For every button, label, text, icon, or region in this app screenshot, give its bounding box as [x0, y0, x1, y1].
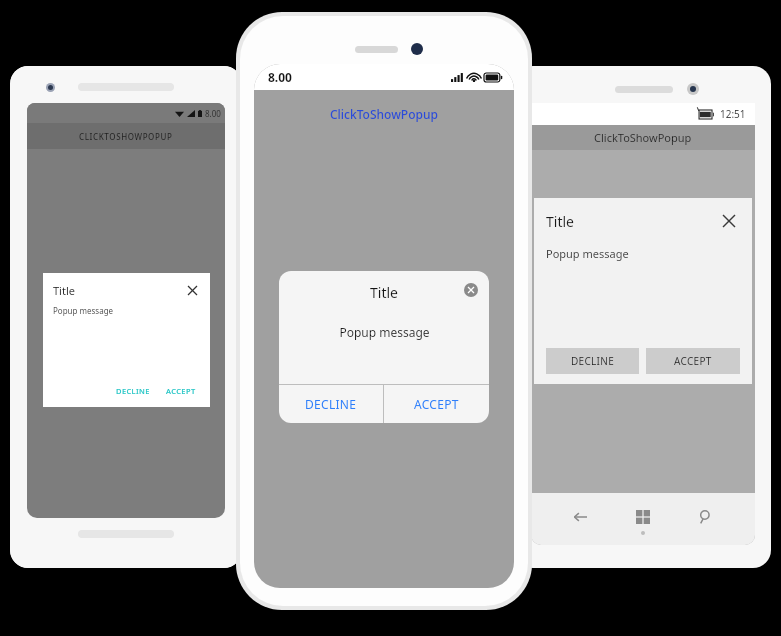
staticText: 8.00: [268, 69, 292, 85]
button[interactable]: DECLINE: [279, 385, 383, 423]
button[interactable]: Back: [566, 503, 594, 531]
staticText: DECLINE: [116, 386, 150, 396]
staticText: ACCEPT: [674, 354, 712, 368]
button[interactable]: CLICKTOSHOWPOPUP: [27, 123, 225, 149]
staticText: ACCEPT: [414, 396, 459, 412]
staticText: ClickToShowPopup: [330, 106, 438, 122]
button[interactable]: ClickToShowPopup: [324, 104, 444, 124]
button[interactable]: DECLINE: [546, 348, 639, 374]
staticText: 12:51: [720, 107, 746, 121]
button[interactable]: Close: [184, 282, 200, 298]
staticText: Title: [370, 283, 398, 302]
staticText: Title: [53, 283, 75, 298]
staticText: Popup message: [53, 305, 114, 316]
staticText: Title: [546, 212, 574, 231]
button[interactable]: Start: [629, 503, 657, 531]
button[interactable]: DECLINE: [112, 384, 154, 398]
button[interactable]: Close: [462, 281, 480, 299]
button[interactable]: ACCEPT: [646, 348, 740, 374]
button[interactable]: ACCEPT: [162, 384, 200, 398]
staticText: Popup message: [546, 246, 629, 261]
staticText: 8.00: [205, 108, 221, 119]
staticText: DECLINE: [305, 396, 357, 412]
staticText: ClickToShowPopup: [594, 130, 692, 145]
staticText: Popup message: [339, 324, 430, 340]
staticText: DECLINE: [571, 354, 615, 368]
button[interactable]: Search: [692, 503, 720, 531]
button[interactable]: ACCEPT: [384, 385, 489, 423]
staticText: ACCEPT: [166, 386, 196, 396]
button[interactable]: Close: [718, 210, 740, 232]
button[interactable]: ClickToShowPopup: [531, 125, 755, 150]
staticText: CLICKTOSHOWPOPUP: [79, 131, 173, 142]
